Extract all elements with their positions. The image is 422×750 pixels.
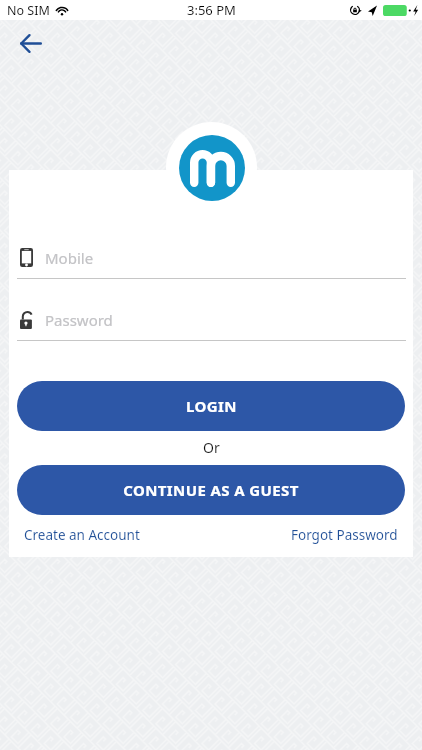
button[interactable]: Mobile (9, 240, 413, 275)
button[interactable]: LOGIN (17, 381, 405, 431)
staticText: Password (45, 310, 113, 330)
staticText: CONTINUE AS A GUEST (123, 480, 299, 500)
button[interactable]: Forgot Password (291, 526, 398, 544)
staticText: Forgot Password (291, 526, 398, 544)
button[interactable]: CONTINUE AS A GUEST (17, 465, 405, 515)
staticText: 3:56 PM (187, 1, 236, 19)
button[interactable]: Create an Account (24, 526, 140, 544)
staticText: Create an Account (24, 526, 140, 544)
staticText: No SIM (7, 2, 50, 19)
button[interactable]: Password (9, 302, 413, 337)
staticText: LOGIN (186, 396, 237, 416)
staticText: Or (203, 438, 220, 457)
button[interactable]: Back (11, 23, 51, 63)
staticText: Mobile (45, 248, 94, 268)
